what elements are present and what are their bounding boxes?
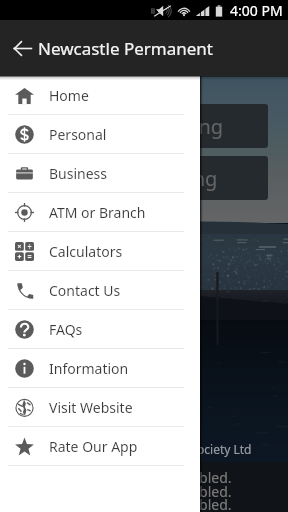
staticText: Newcastle Permanent [38,37,213,60]
button[interactable]: Back [13,39,32,58]
staticText: Home [49,86,89,105]
staticText: Location services disabled. Location ser… [56,468,232,512]
button[interactable]: FAQs [0,310,200,349]
staticText: 4:00 PM [230,1,283,20]
button[interactable]: Contact Us [0,271,200,310]
button[interactable]: Calculators [0,232,200,271]
staticText: Information [49,359,129,378]
staticText: Personal [49,125,107,144]
staticText: Contact Us [49,281,121,300]
staticText: Mobile Banking [71,165,218,192]
button[interactable]: Personal [0,115,200,154]
staticText: Internet Banking [64,113,224,140]
staticText: Calculators [49,242,123,261]
staticText: Rate Our App [49,437,138,456]
button[interactable]: Mobile Banking [20,156,268,200]
staticText: FAQs [49,320,83,339]
button[interactable]: Information [0,349,200,388]
staticText: Business [49,164,108,183]
button[interactable]: Internet Banking [20,104,268,148]
staticText: Visit Website [49,398,133,417]
button[interactable]: Rate Our App [0,427,200,466]
staticText: ATM or Branch [49,203,146,222]
staticText: Newcastle Permanent Building Society Ltd [14,441,252,457]
button[interactable]: Home [0,76,200,115]
button[interactable]: Business [0,154,200,193]
button[interactable]: ATM or Branch [0,193,200,232]
button[interactable]: Visit Website [0,388,200,427]
